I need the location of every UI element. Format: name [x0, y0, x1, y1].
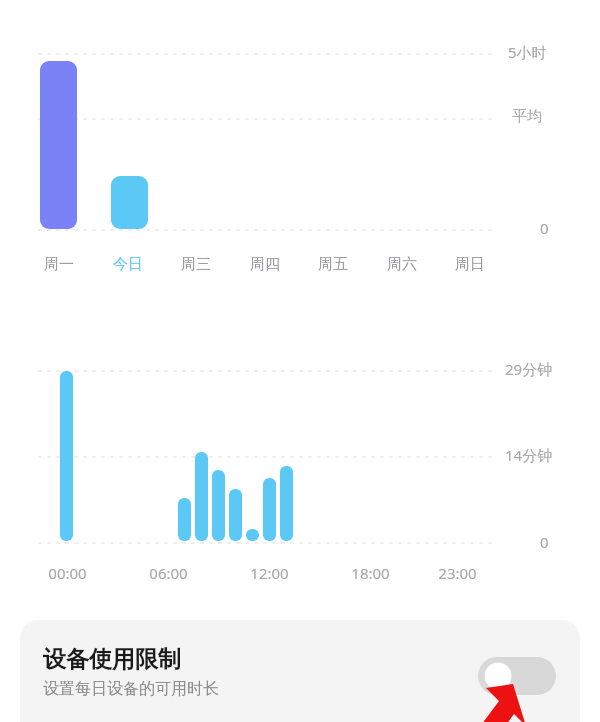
staticText: 今日: [113, 255, 143, 274]
button[interactable]: 周日: [440, 250, 500, 278]
button[interactable]: 今日: [98, 250, 158, 278]
button[interactable]: 周五: [303, 250, 363, 278]
staticText: 设备使用限制: [43, 645, 181, 674]
button[interactable]: 周三: [166, 250, 226, 278]
button[interactable]: 周一: [29, 250, 89, 278]
staticText: 0: [540, 218, 549, 238]
staticText: 06:00: [149, 563, 188, 583]
staticText: 周三: [181, 255, 211, 274]
staticText: 设置每日设备的可用时长: [43, 679, 219, 699]
staticText: 00:00: [48, 563, 87, 583]
button[interactable]: 周六: [372, 250, 432, 278]
staticText: 周四: [250, 255, 280, 274]
staticText: 18:00: [351, 563, 390, 583]
staticText: 12:00: [250, 563, 289, 583]
staticText: 周日: [455, 255, 485, 274]
staticText: 周六: [387, 255, 417, 274]
button[interactable]: 设备使用限制开关: [478, 657, 556, 695]
staticText: 5小时: [508, 42, 547, 62]
staticText: 29分钟: [505, 359, 553, 379]
staticText: 14分钟: [505, 445, 553, 465]
staticText: 23:00: [438, 563, 477, 583]
staticText: 周五: [318, 255, 348, 274]
staticText: 周一: [44, 255, 74, 274]
button[interactable]: 周四: [235, 250, 295, 278]
staticText: 0: [540, 532, 549, 552]
button[interactable]: 设备使用限制: [20, 620, 580, 722]
staticText: 平均: [512, 107, 542, 126]
